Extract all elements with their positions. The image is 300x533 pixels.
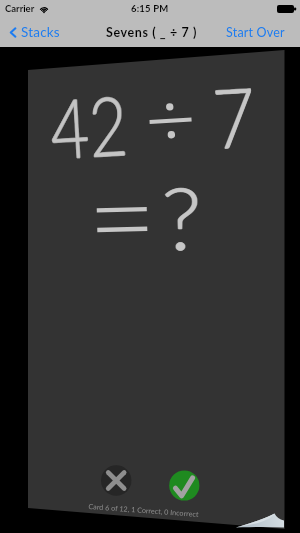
button[interactable]: Stacks bbox=[7, 20, 62, 44]
staticText: Carrier bbox=[5, 3, 35, 14]
staticText: Start Over bbox=[226, 25, 285, 40]
button[interactable]: Start Over bbox=[224, 21, 287, 44]
staticText: 6:15 PM bbox=[131, 3, 169, 14]
staticText: Sevens ( _ ÷ 7 ) bbox=[106, 25, 197, 40]
button[interactable]: Mark correct bbox=[169, 470, 200, 501]
button[interactable]: Mark incorrect bbox=[101, 465, 132, 496]
staticText: Stacks bbox=[21, 24, 60, 40]
